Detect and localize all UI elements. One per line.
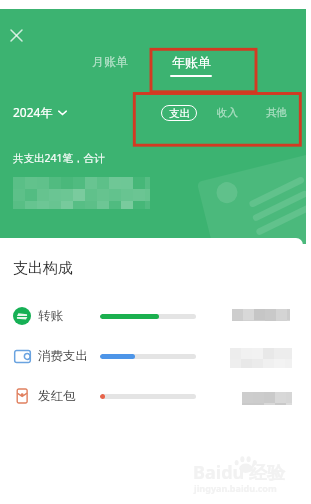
button[interactable]: 支出 (161, 105, 197, 121)
button[interactable]: 转账 (0, 296, 303, 336)
button[interactable]: 发红包 (0, 376, 303, 416)
staticText: 月账单 (92, 54, 128, 69)
button[interactable]: 消费支出 (0, 336, 303, 376)
staticText: jingyan.baidu.com (194, 482, 277, 494)
staticText: 支出 (169, 107, 190, 120)
button[interactable]: 收入 (215, 104, 240, 121)
button[interactable]: 其他 (264, 104, 289, 121)
button[interactable]: 月账单 (88, 50, 132, 73)
button[interactable]: Close (2, 21, 30, 49)
staticText: 共支出241笔，合计 (13, 151, 105, 165)
staticText: 转账 (38, 308, 63, 324)
button[interactable]: 年账单 (166, 50, 216, 81)
staticText: Baidu 经验 (193, 460, 285, 485)
staticText: 发红包 (38, 388, 76, 404)
staticText: 年账单 (172, 54, 211, 70)
staticText: 其他 (266, 106, 287, 119)
staticText: 收入 (217, 106, 238, 119)
staticText: 消费支出 (38, 348, 88, 364)
staticText: 2024年 (13, 104, 53, 120)
staticText: 支出构成 (13, 259, 73, 278)
button[interactable]: 2024年 (13, 100, 67, 124)
